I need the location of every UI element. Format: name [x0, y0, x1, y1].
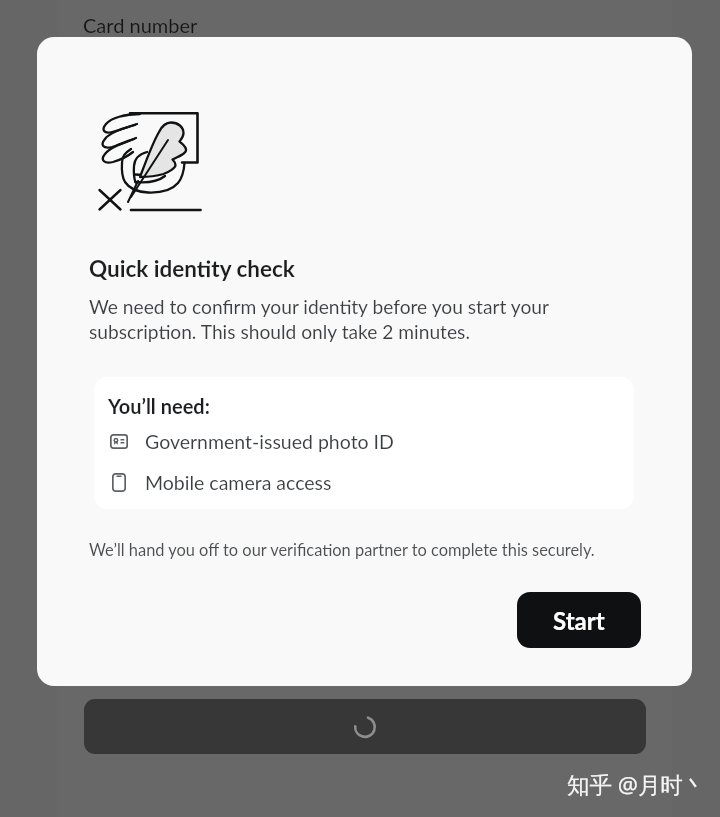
staticText: Start	[553, 606, 605, 635]
staticText: 知乎 @月时丶	[567, 769, 706, 800]
staticText: Card number	[83, 13, 198, 37]
staticText: Quick identity check	[89, 255, 295, 282]
staticText: Mobile camera access	[145, 471, 332, 494]
button[interactable]: Loading	[84, 699, 646, 754]
staticText: We’ll hand you off to our verification p…	[89, 540, 595, 560]
staticText: We need to confirm your identity before …	[89, 295, 549, 343]
staticText: Government-issued photo ID	[145, 430, 394, 453]
staticText: You’ll need:	[108, 394, 210, 418]
button[interactable]: Start	[517, 592, 641, 648]
